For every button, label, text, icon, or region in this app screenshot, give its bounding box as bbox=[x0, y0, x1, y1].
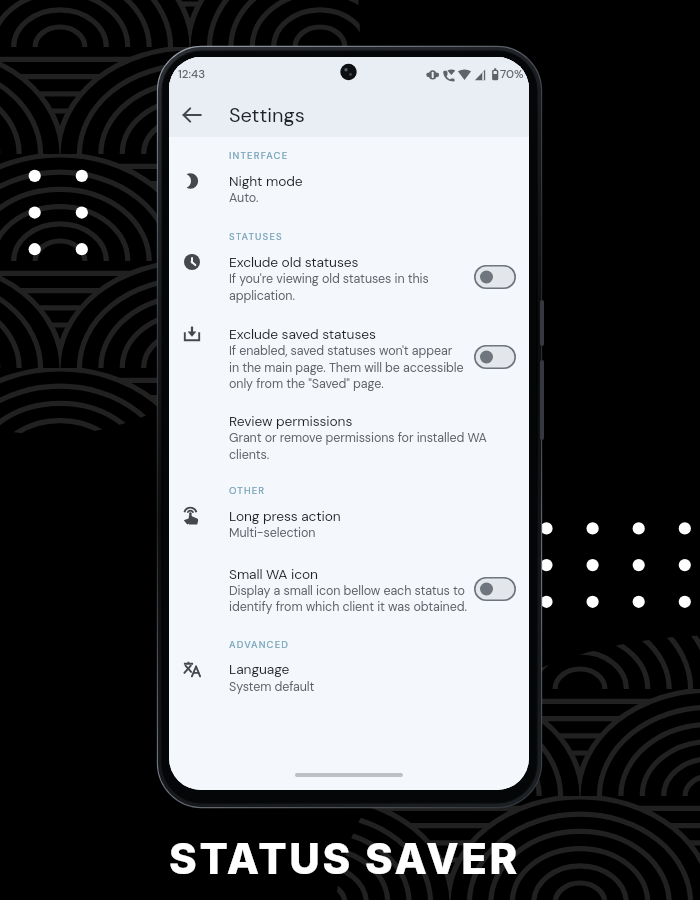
staticText: Small WA icon bbox=[229, 565, 318, 583]
staticText: Night mode bbox=[229, 172, 303, 190]
staticText: application. bbox=[229, 288, 295, 304]
staticText: clients. bbox=[229, 447, 270, 463]
staticText: Review permissions bbox=[229, 412, 353, 430]
button[interactable] bbox=[169, 503, 529, 543]
staticText: only from the "Saved" page. bbox=[229, 376, 384, 392]
staticText: If you're viewing old statuses in this bbox=[229, 271, 429, 287]
staticText: STATUSES bbox=[229, 230, 283, 242]
staticText: Language bbox=[229, 660, 290, 678]
staticText: Exclude saved statuses bbox=[229, 325, 376, 343]
staticText: STATUS SAVER bbox=[169, 833, 521, 884]
staticText: Long press action bbox=[229, 507, 341, 525]
button[interactable]: Back bbox=[172, 95, 212, 135]
staticText: ADVANCED bbox=[229, 638, 290, 650]
staticText: Settings bbox=[229, 102, 305, 128]
button[interactable] bbox=[169, 321, 529, 393]
staticText: System default bbox=[229, 679, 315, 695]
staticText: INTERFACE bbox=[229, 149, 289, 161]
staticText: Exclude old statuses bbox=[229, 253, 359, 271]
staticText: Grant or remove permissions for installe… bbox=[229, 430, 487, 446]
staticText: If enabled, saved statuses won't appear bbox=[229, 343, 453, 359]
staticText: OTHER bbox=[229, 484, 266, 496]
button[interactable] bbox=[169, 408, 529, 463]
staticText: identify from which client it was obtain… bbox=[229, 599, 467, 615]
button[interactable]: Toggle bbox=[474, 265, 516, 289]
button[interactable]: Toggle bbox=[474, 577, 516, 601]
staticText: in the main page. Them will be accessibl… bbox=[229, 360, 464, 376]
staticText: 12:43 bbox=[178, 66, 206, 81]
staticText: Display a small icon bellow each status … bbox=[229, 583, 465, 599]
staticText: 70% bbox=[500, 66, 524, 81]
button[interactable]: Toggle bbox=[474, 345, 516, 369]
button[interactable] bbox=[169, 249, 529, 305]
button[interactable] bbox=[169, 168, 529, 208]
staticText: Multi-selection bbox=[229, 525, 316, 541]
staticText: Auto. bbox=[229, 190, 259, 206]
button[interactable] bbox=[169, 657, 529, 697]
button[interactable] bbox=[169, 561, 529, 616]
